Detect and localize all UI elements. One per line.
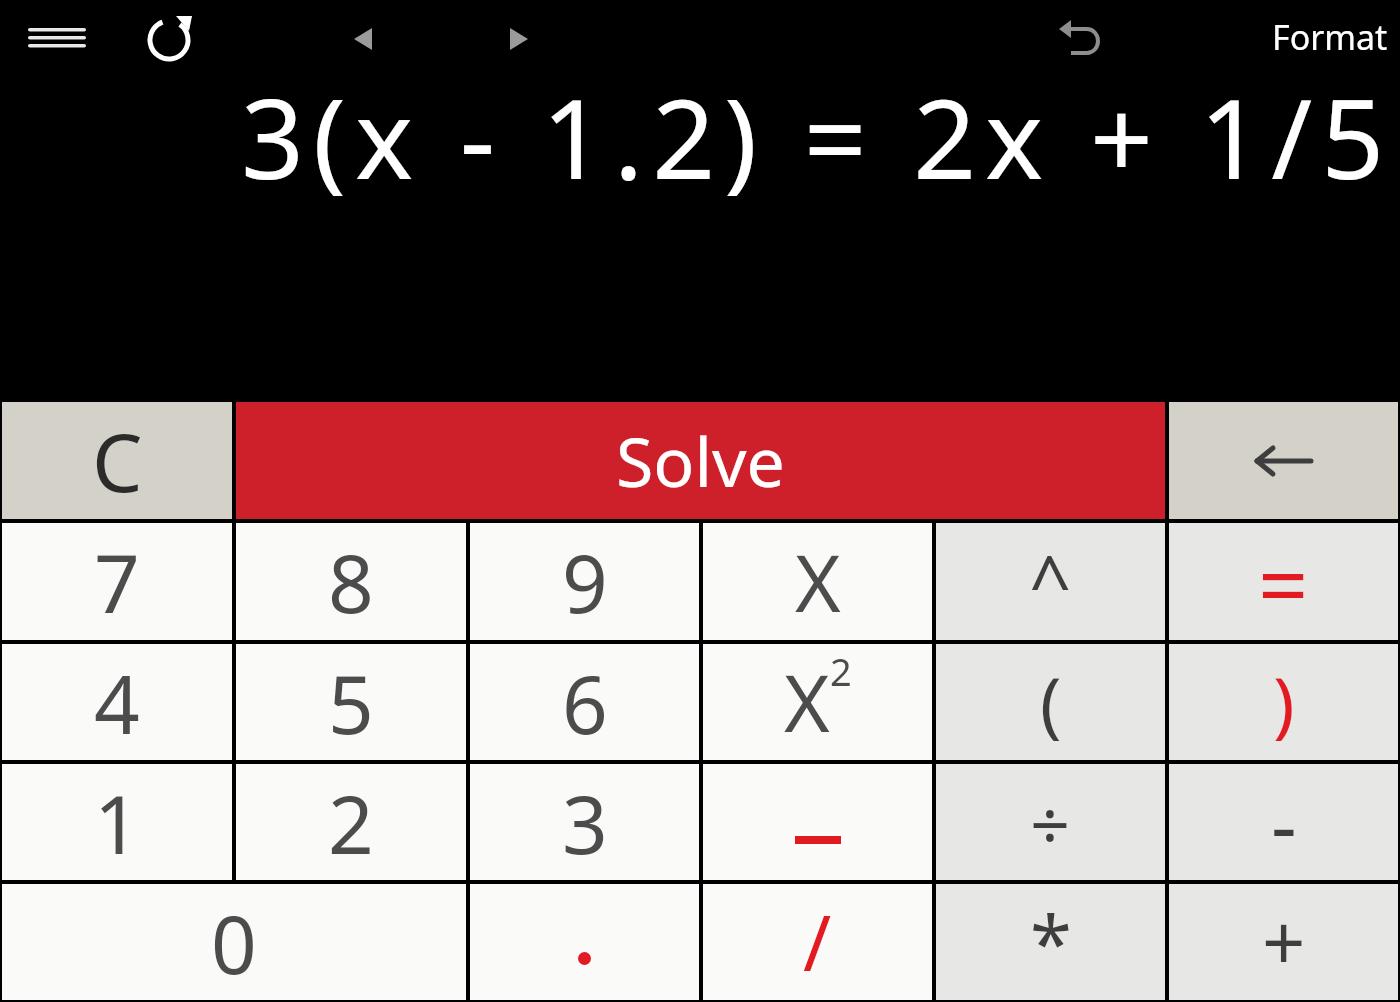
staticText: ) [1273,653,1295,751]
staticText: 5 [328,648,374,757]
button[interactable]: 8 [236,523,466,640]
staticText: 0 [211,888,257,997]
button[interactable]: ^ [936,523,1165,640]
staticText: 4 [94,648,140,757]
staticText: 3 [562,768,608,877]
button[interactable]: 5 [236,644,466,760]
button[interactable]: 2 [236,764,466,880]
staticText: = [1258,523,1309,640]
staticText: / [803,890,832,994]
button[interactable]: Solve [236,402,1165,519]
button[interactable]: C [2,402,232,519]
staticText: X [784,649,830,755]
staticText: ÷ [1030,775,1071,870]
button[interactable]: 4 [2,644,232,760]
button[interactable] [142,11,198,67]
staticText: Solve [616,414,785,507]
button[interactable]: 1 [2,764,232,880]
staticText: 2 [328,768,374,877]
button[interactable]: / [703,884,932,1000]
button[interactable]: 6 [470,644,699,760]
staticText: ^ [1029,531,1072,632]
button[interactable] [470,884,699,1000]
button[interactable]: 7 [2,523,232,640]
staticText: 7 [94,527,140,636]
button[interactable]: - [1169,764,1398,880]
staticText: - [1271,768,1297,877]
staticText: 8 [328,527,374,636]
button[interactable]: 9 [470,523,699,640]
button[interactable]: * [936,884,1165,1000]
staticText: X [795,529,841,635]
staticText: 2 [830,645,852,697]
staticText: Format [1272,14,1388,60]
staticText: 3(x - 1.2) = 2x + 1/5 [241,61,1394,211]
staticText: C [92,406,143,515]
button[interactable] [1048,12,1104,64]
button[interactable]: Format [1272,14,1388,60]
button[interactable]: = [1169,523,1398,640]
staticText: 9 [562,527,608,636]
staticText: 1 [94,768,140,877]
button[interactable]: 0 [2,884,466,1000]
button[interactable] [20,20,94,56]
staticText: * [1030,890,1072,994]
staticText: + [1262,890,1306,994]
button[interactable] [703,764,932,880]
staticText: ( [1040,653,1062,751]
button[interactable]: 3 [470,764,699,880]
button[interactable]: + [1169,884,1398,1000]
staticText: 6 [562,648,608,757]
button[interactable]: X [703,644,932,760]
button[interactable]: ÷ [936,764,1165,880]
button[interactable]: X [703,523,932,640]
button[interactable]: ) [1169,644,1398,760]
button[interactable]: ( [936,644,1165,760]
button[interactable] [496,16,542,62]
button[interactable] [1169,402,1398,519]
button[interactable] [340,16,386,62]
